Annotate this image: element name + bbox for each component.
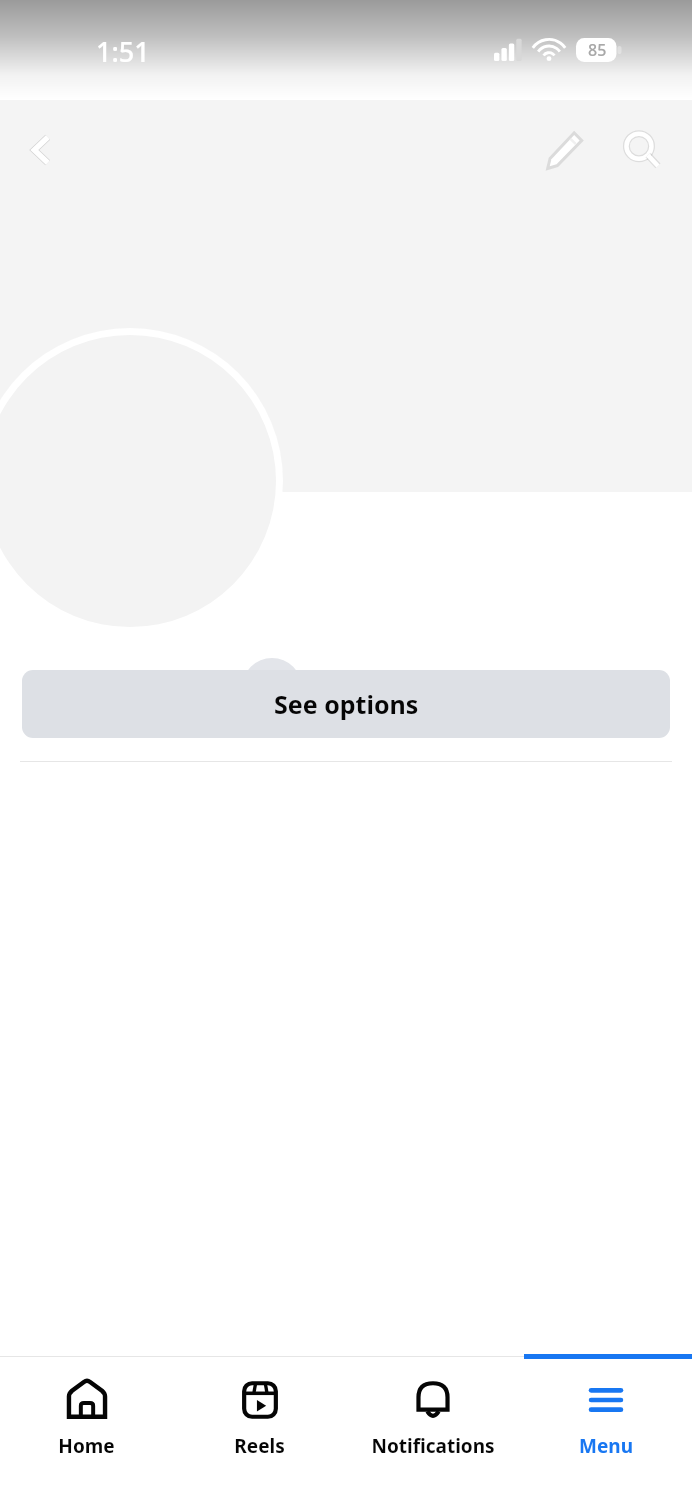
staticText: Home — [58, 1433, 115, 1459]
button[interactable]: See options — [22, 670, 670, 738]
button[interactable]: Profile picture — [0, 328, 283, 634]
staticText: Notifications — [371, 1433, 495, 1459]
button[interactable]: Reels — [173, 1356, 346, 1466]
button[interactable]: Change profile photo — [242, 658, 302, 718]
staticText: Reels — [234, 1433, 285, 1459]
staticText: See options — [274, 687, 419, 721]
button[interactable]: Notifications — [346, 1356, 519, 1466]
staticText: 1:51 — [96, 33, 150, 70]
button[interactable]: Edit — [534, 120, 594, 180]
staticText: Menu — [579, 1433, 633, 1459]
button[interactable]: Search — [612, 120, 672, 180]
button[interactable]: Menu — [519, 1356, 692, 1466]
button[interactable]: Back — [12, 120, 72, 180]
button[interactable]: Home — [0, 1356, 173, 1466]
staticText: 85 — [588, 39, 607, 61]
